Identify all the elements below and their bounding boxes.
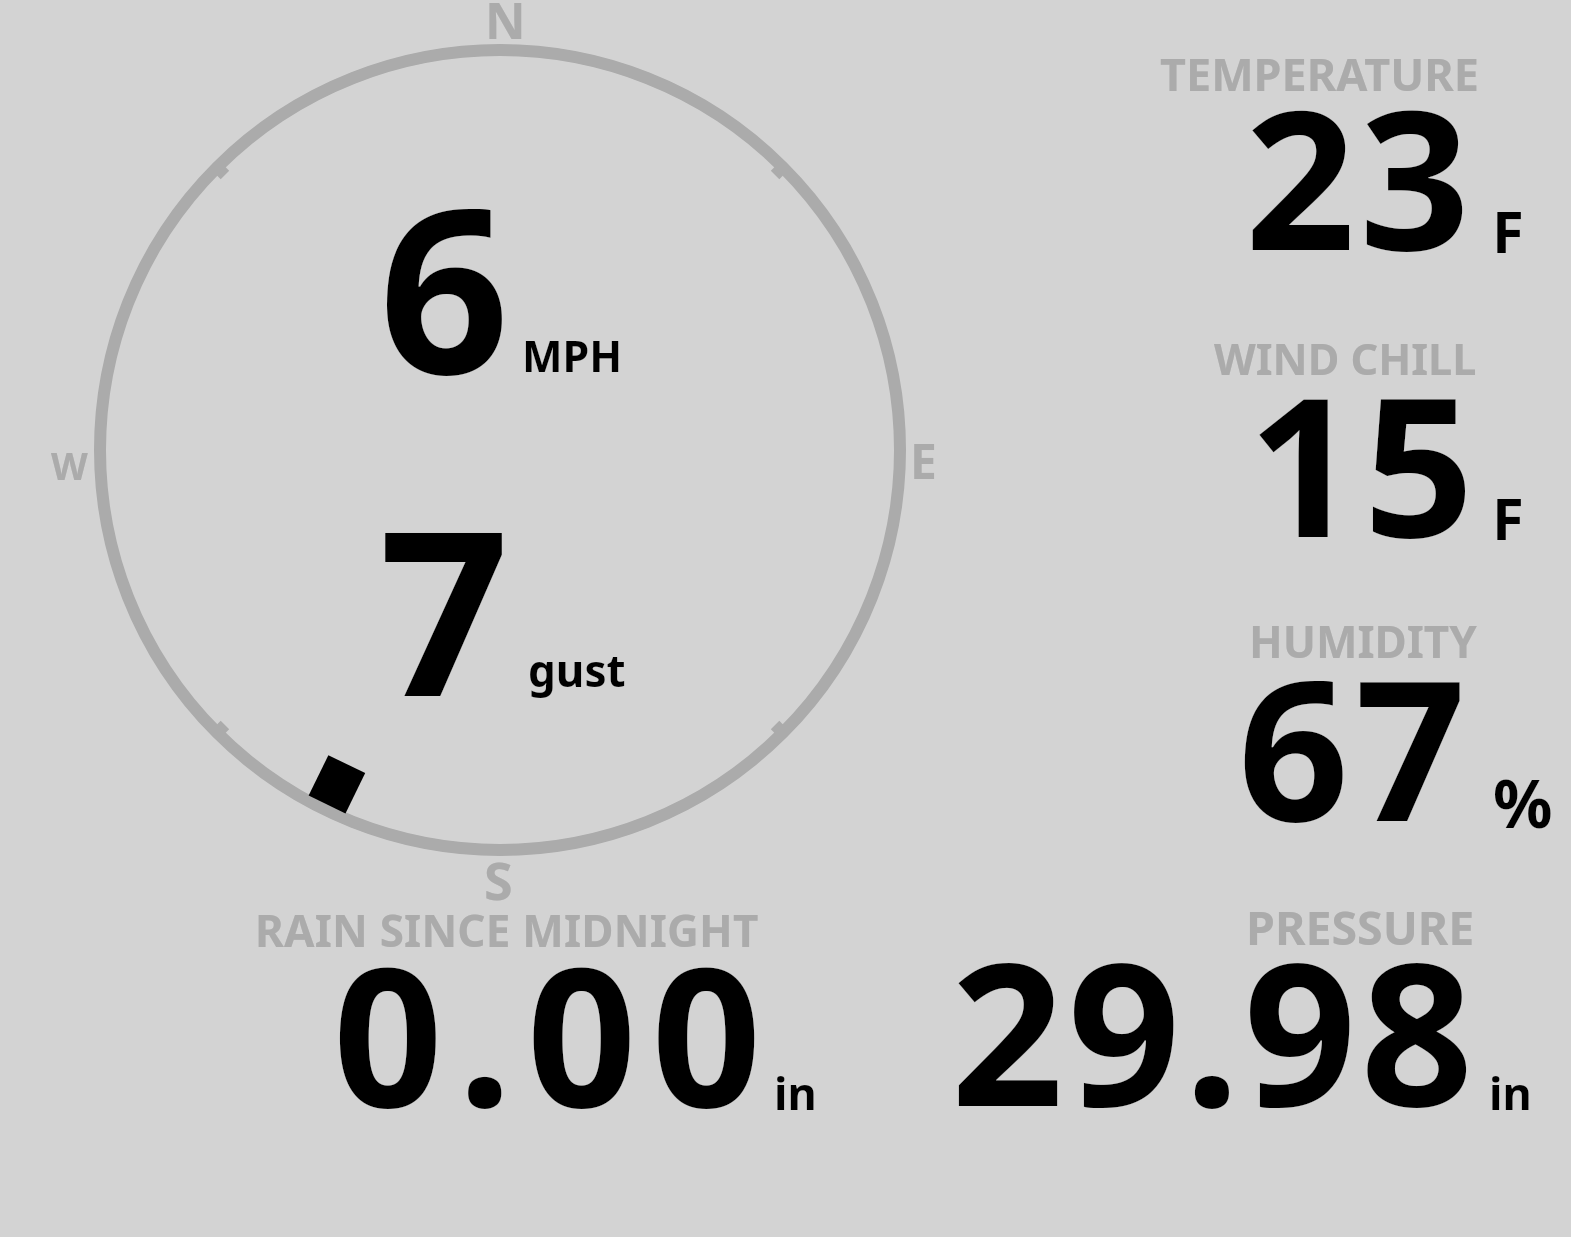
staticText: TEMPERATURE xyxy=(1160,43,1479,104)
staticText: S xyxy=(484,844,513,915)
staticText: 29.98 xyxy=(951,895,1478,1140)
staticText: PRESSURE xyxy=(1246,895,1475,958)
staticText: 6 xyxy=(379,130,510,441)
staticText: RAIN SINCE MIDNIGHT xyxy=(255,900,759,960)
staticText: % xyxy=(1493,757,1553,847)
staticText: WIND CHILL xyxy=(1214,329,1477,388)
button[interactable]: PRESSURE xyxy=(900,886,1550,1131)
staticText: F xyxy=(1492,478,1524,557)
staticText: 67 xyxy=(1238,614,1472,864)
button[interactable]: Wind direction compass, 6 miles per hour… xyxy=(0,0,1000,900)
button[interactable]: WIND CHILL xyxy=(1100,313,1550,558)
button[interactable]: HUMIDITY xyxy=(1100,598,1560,848)
button[interactable]: RAIN SINCE MIDNIGHT xyxy=(180,886,830,1131)
staticText: gust xyxy=(528,640,626,700)
staticText: 15 xyxy=(1248,331,1479,576)
staticText: HUMIDITY xyxy=(1249,611,1477,671)
staticText: in xyxy=(774,1062,817,1123)
staticText: W xyxy=(51,439,88,491)
staticText: E xyxy=(910,428,937,493)
staticText: in xyxy=(1489,1062,1532,1123)
staticText: 23 xyxy=(1245,44,1474,289)
staticText: MPH xyxy=(522,326,623,385)
staticText: 7 xyxy=(379,452,510,763)
staticText: 0.00 xyxy=(333,902,777,1147)
button[interactable]: TEMPERATURE xyxy=(1100,26,1550,271)
staticText: N xyxy=(485,0,526,54)
staticText: F xyxy=(1492,191,1524,270)
